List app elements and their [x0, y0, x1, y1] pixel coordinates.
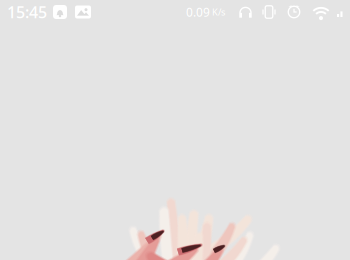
staticText: K/s — [212, 6, 225, 18]
staticText: 0.09 — [186, 4, 210, 20]
staticText: 15:45 — [7, 1, 47, 23]
